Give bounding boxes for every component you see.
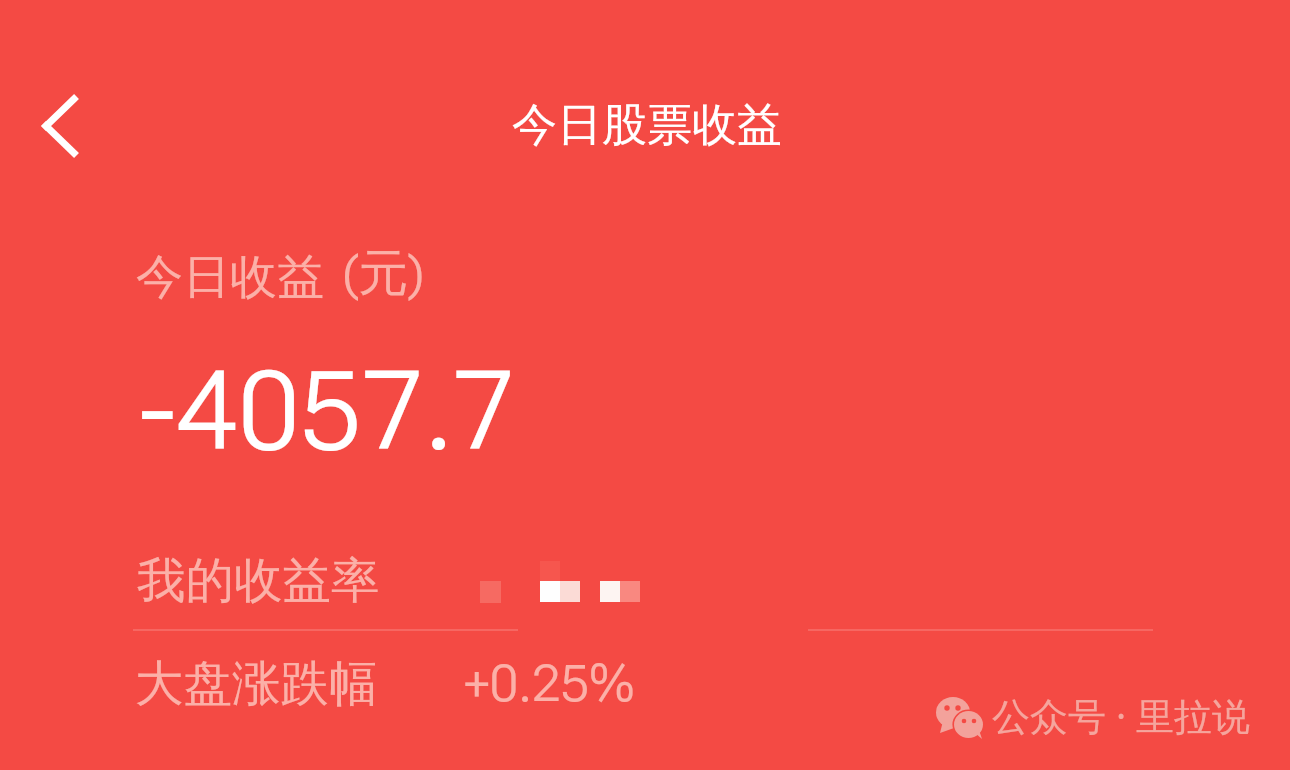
button[interactable]: 我的收益率 xyxy=(133,540,518,629)
button[interactable]: 大盘涨跌幅 xyxy=(133,640,518,728)
staticText: 今日收益 xyxy=(136,248,324,307)
staticText: 我的收益率 xyxy=(137,550,380,611)
staticText: 今日股票收益 xyxy=(512,97,782,154)
staticText: (元) xyxy=(342,242,425,305)
button[interactable]: Back xyxy=(10,78,110,174)
staticText: 公众号 · 里拉说 xyxy=(992,689,1250,741)
staticText: 大盘涨跌幅 xyxy=(135,653,378,714)
staticText: +0.25% xyxy=(464,654,635,714)
staticText: -4057.7 xyxy=(139,347,516,476)
